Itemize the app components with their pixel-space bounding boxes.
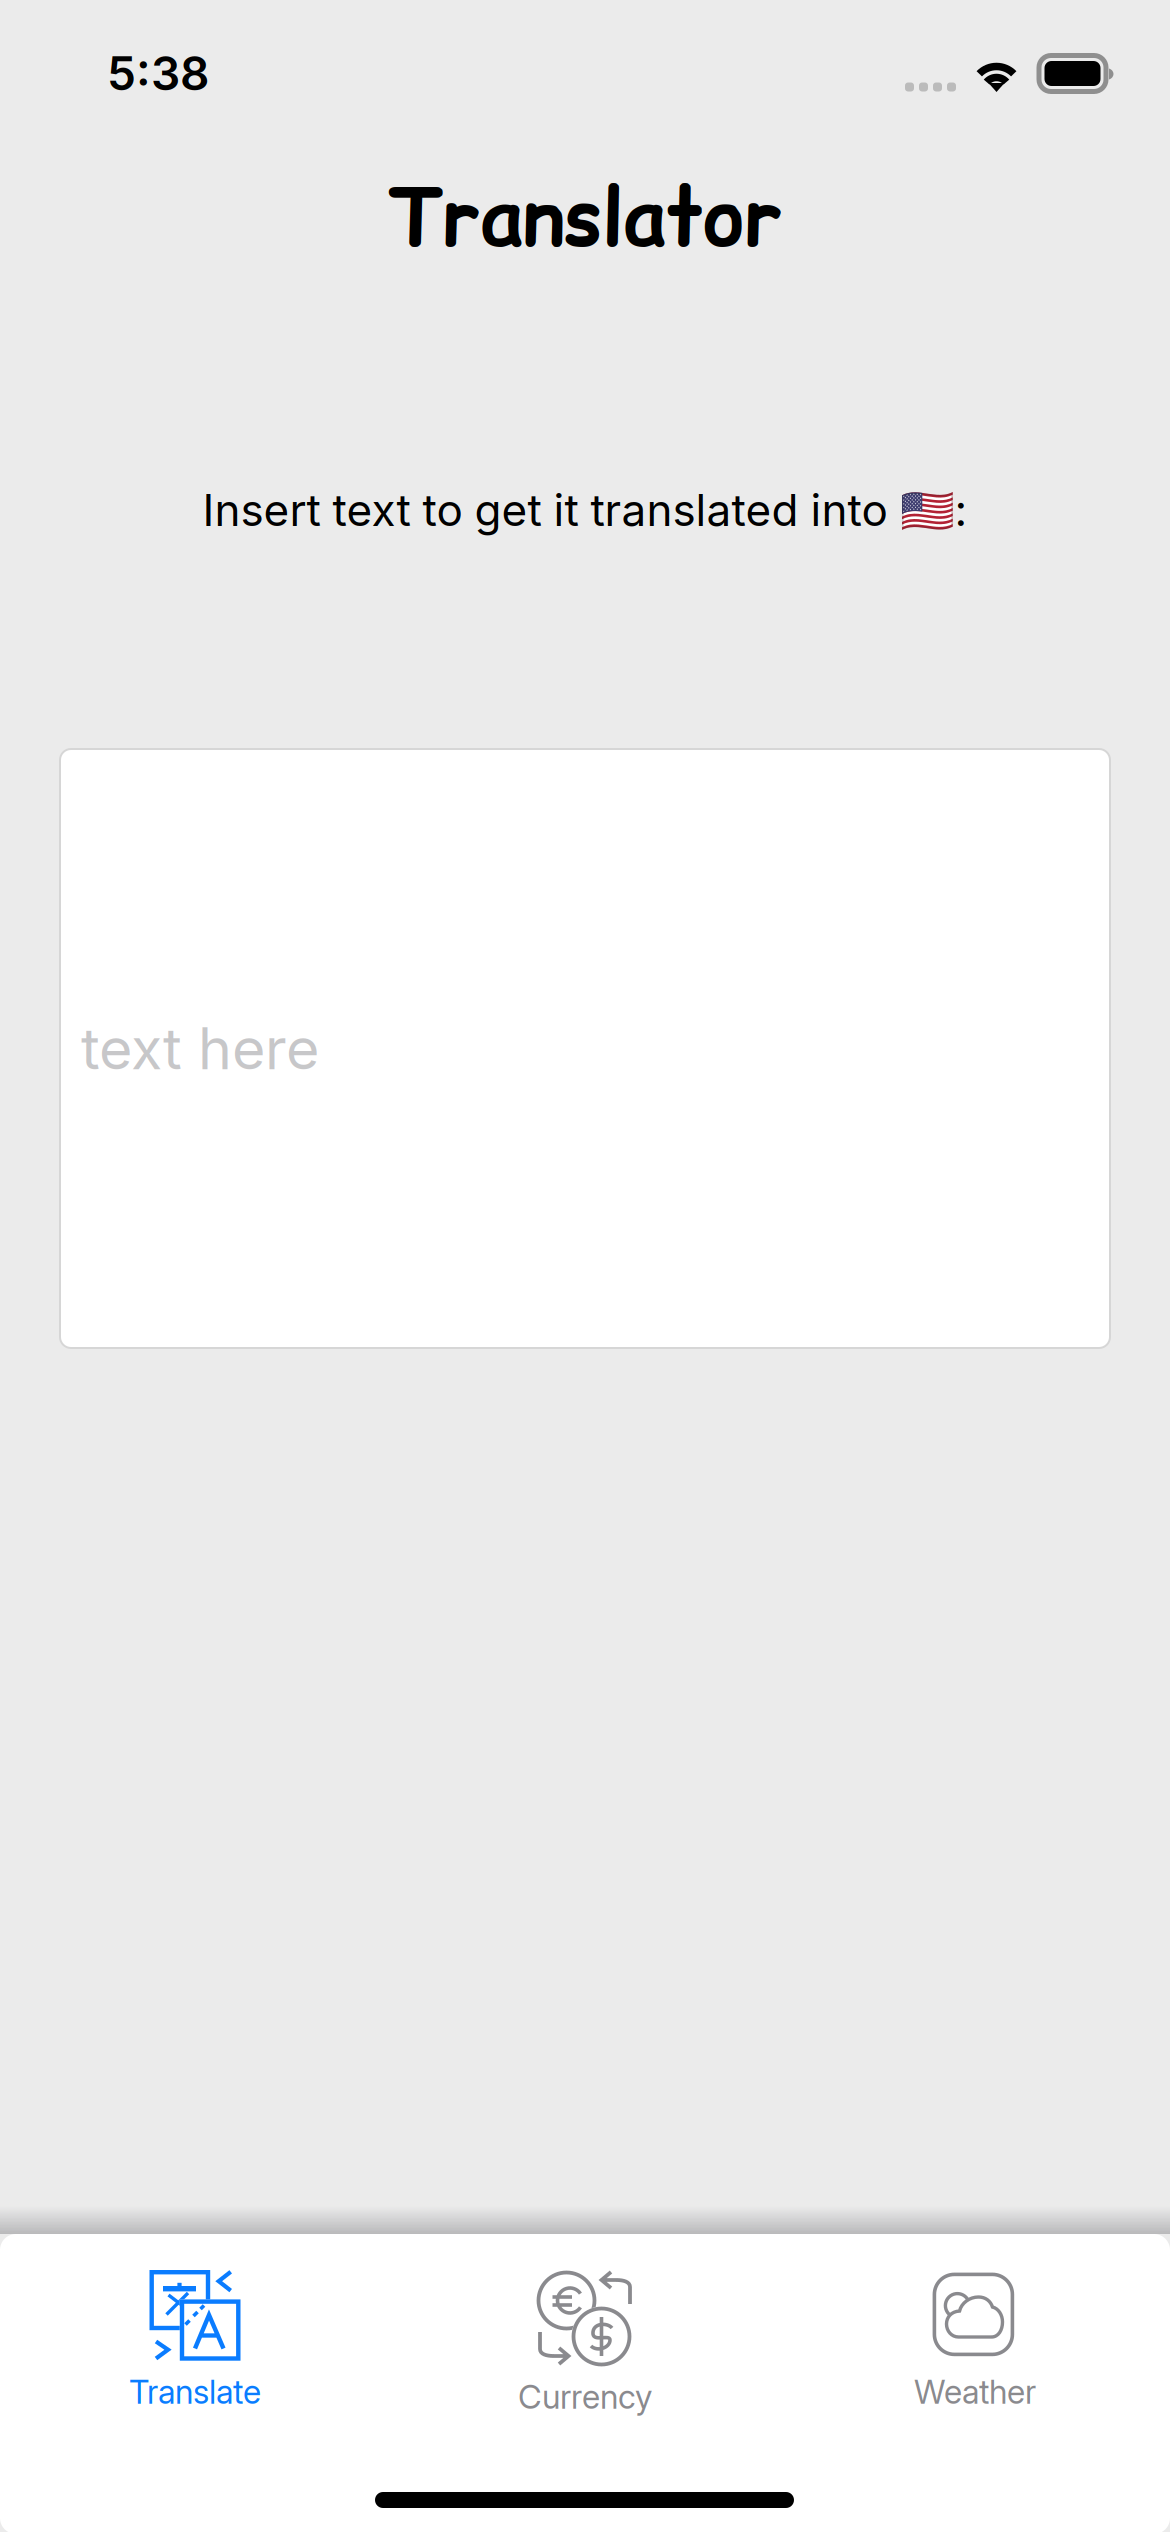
button[interactable]: Translate bbox=[0, 2270, 390, 2420]
staticText: 5:38 bbox=[107, 46, 209, 101]
staticText: Currency bbox=[518, 2377, 652, 2416]
staticText: Weather bbox=[914, 2372, 1036, 2411]
button[interactable]: Currency bbox=[390, 2270, 780, 2420]
button[interactable]: Weather bbox=[780, 2270, 1170, 2420]
staticText: Translator bbox=[388, 162, 782, 271]
staticText: Translate bbox=[129, 2372, 261, 2411]
staticText: text here bbox=[81, 1014, 319, 1083]
staticText: Insert text to get it translated into 🇺🇸… bbox=[202, 483, 967, 537]
